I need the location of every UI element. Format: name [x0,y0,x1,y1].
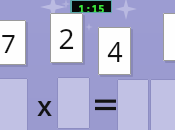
button[interactable] [163,13,175,61]
button[interactable]: 7 [0,20,26,65]
staticText: 1:15 [78,1,105,12]
button[interactable]: 2 [50,13,83,63]
button[interactable]: Result tens slot [117,79,149,130]
button[interactable]: 4 [98,27,131,75]
button[interactable]: Timer 1:15 [70,0,112,13]
staticText: 4 [107,33,123,70]
staticText: X [37,92,52,120]
button[interactable]: First operand slot [0,78,28,130]
staticText: 2 [58,19,75,57]
staticText: 7 [1,25,16,60]
button[interactable]: Result ones slot [150,79,175,130]
button[interactable]: Second operand slot [57,77,90,129]
